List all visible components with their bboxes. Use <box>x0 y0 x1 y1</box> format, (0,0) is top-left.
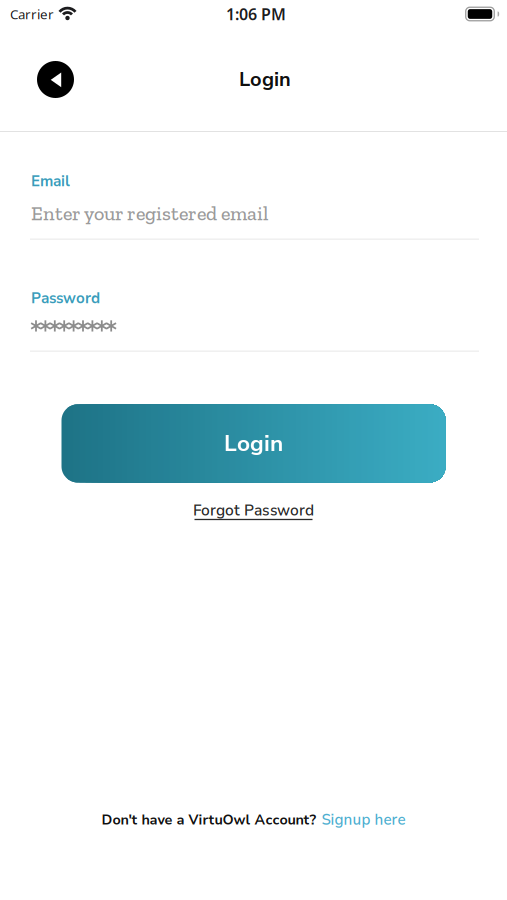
staticText: Enter your registered email <box>31 201 268 225</box>
staticText: Login <box>224 428 283 459</box>
staticText: Login <box>239 66 291 93</box>
staticText: Signup here <box>321 810 405 830</box>
staticText: 1:06 PM <box>226 3 286 25</box>
button[interactable]: Forgot Password <box>193 500 314 520</box>
button[interactable]: Back <box>37 61 74 98</box>
staticText: Don't have a VirtuOwl Account? <box>101 810 316 829</box>
staticText: Carrier <box>10 5 54 23</box>
staticText: Password <box>31 288 100 308</box>
button[interactable]: Password <box>0 288 507 352</box>
button[interactable]: Login <box>61 404 445 482</box>
staticText: Email <box>31 171 70 191</box>
button[interactable]: Don't have a VirtuOwl Account? <box>101 810 405 830</box>
button[interactable]: Email, Enter your registered email <box>0 171 507 240</box>
staticText: Forgot Password <box>193 500 314 521</box>
